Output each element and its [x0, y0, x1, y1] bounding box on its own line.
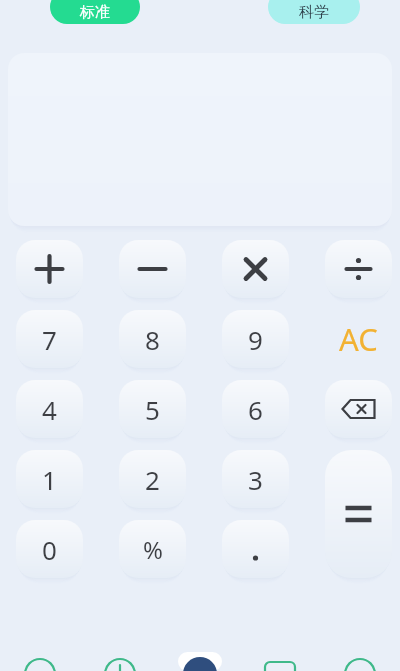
staticText: 6 [248, 392, 263, 427]
button[interactable]: 4 [16, 380, 83, 438]
button[interactable]: Equals [325, 450, 392, 578]
button[interactable]: 0 [16, 520, 83, 578]
button[interactable]: % [119, 520, 186, 578]
button[interactable]: 6 [222, 380, 289, 438]
staticText: 4 [42, 392, 57, 427]
staticText: 标准 [80, 3, 110, 22]
staticText: 5 [145, 392, 160, 427]
button[interactable]: Clock [12, 652, 68, 671]
staticText: % [143, 533, 163, 566]
button[interactable]: 5 [119, 380, 186, 438]
staticText: 1 [42, 462, 57, 497]
staticText: 8 [145, 322, 160, 357]
button[interactable]: Notes [252, 652, 308, 671]
button[interactable]: 2 [119, 450, 186, 508]
button[interactable]: Multiply [222, 240, 289, 298]
button[interactable]: 科学 [268, 0, 360, 24]
button[interactable]: 8 [119, 310, 186, 368]
staticText: 科学 [299, 3, 329, 22]
staticText: 9 [248, 322, 263, 357]
button[interactable]: Minus [119, 240, 186, 298]
button[interactable]: 7 [16, 310, 83, 368]
button[interactable]: 9 [222, 310, 289, 368]
button[interactable]: Divide [325, 240, 392, 298]
button[interactable]: Backspace [325, 380, 392, 438]
button[interactable]: Plus [16, 240, 83, 298]
button[interactable]: Decimal point [222, 520, 289, 578]
button[interactable]: 1 [16, 450, 83, 508]
button[interactable]: 标准 [50, 0, 140, 24]
staticText: 2 [145, 462, 160, 497]
button[interactable]: Settings [332, 652, 388, 671]
button[interactable]: 3 [222, 450, 289, 508]
staticText: 0 [42, 532, 57, 567]
staticText: 3 [248, 462, 263, 497]
button[interactable]: AC [325, 310, 392, 368]
staticText: 7 [42, 322, 57, 357]
button[interactable]: Calculator [172, 652, 228, 671]
button[interactable]: Timer [92, 652, 148, 671]
staticText: AC [339, 318, 378, 360]
